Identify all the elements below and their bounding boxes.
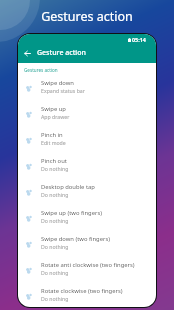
staticText: 05:14 xyxy=(132,36,146,43)
button[interactable]: Rotate anti clockwise (two fingers) xyxy=(18,256,156,282)
staticText: Swipe up xyxy=(41,105,66,113)
staticText: Desktop double tap xyxy=(41,183,95,191)
button[interactable]: Rotate clockwise (two fingers) xyxy=(18,282,156,307)
button[interactable]: Desktop double tap xyxy=(18,178,156,204)
staticText: Edit mode xyxy=(41,139,66,146)
staticText: Expand status bar xyxy=(41,87,85,94)
staticText: App drawer xyxy=(41,113,70,120)
staticText: Rotate clockwise (two fingers) xyxy=(41,287,123,295)
staticText: Do nothing xyxy=(41,165,69,172)
staticText: Do nothing xyxy=(41,217,69,224)
button[interactable]: Swipe down xyxy=(18,74,156,100)
button[interactable]: Swipe down (two fingers) xyxy=(18,230,156,256)
button[interactable]: Swipe up xyxy=(18,100,156,126)
button[interactable]: Pinch in xyxy=(18,126,156,152)
staticText: Swipe down (two fingers) xyxy=(41,235,110,243)
staticText: Swipe down xyxy=(41,79,74,87)
button[interactable]: Back xyxy=(22,48,33,59)
staticText: Do nothing xyxy=(41,269,69,276)
button[interactable]: Swipe up (two fingers) xyxy=(18,204,156,230)
staticText: Gesture action xyxy=(37,48,86,58)
staticText: Swipe up (two fingers) xyxy=(41,209,102,217)
staticText: Do nothing xyxy=(41,191,69,198)
staticText: Pinch in xyxy=(41,131,63,139)
staticText: Rotate anti clockwise (two fingers) xyxy=(41,261,135,269)
staticText: Do nothing xyxy=(41,295,69,302)
staticText: Do nothing xyxy=(41,243,69,250)
button[interactable]: Pinch out xyxy=(18,152,156,178)
staticText: Pinch out xyxy=(41,157,67,165)
staticText: Gestures action xyxy=(24,67,58,73)
staticText: Gestures action xyxy=(0,8,174,25)
